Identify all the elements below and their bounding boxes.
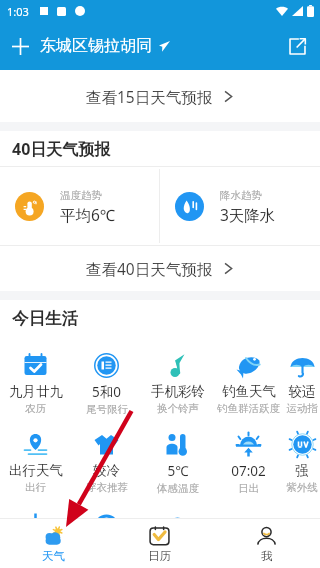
button[interactable]: 查看40日天气预报 [0, 246, 320, 291]
staticText: 洗车指数 [15, 560, 57, 568]
staticText: 农历 [25, 402, 46, 415]
staticText: 九月廿九 [9, 383, 63, 400]
staticText: 降水趋势 [220, 189, 262, 202]
button[interactable]: 日历 [106, 519, 213, 563]
staticText: 较冷 [93, 462, 120, 479]
button[interactable]: 手机彩铃 [142, 348, 213, 426]
button[interactable]: 东城区锡拉胡同 [40, 22, 170, 70]
staticText: 平均6℃ [60, 204, 116, 225]
button[interactable]: 降水趋势 [160, 167, 320, 245]
button[interactable]: 我 [213, 519, 320, 563]
staticText: 手机彩铃 [151, 383, 205, 400]
button[interactable]: 较弱 [213, 506, 284, 568]
staticText: 出行 [25, 481, 46, 494]
staticText: 钓鱼群活跃度 [217, 402, 280, 415]
button[interactable]: 较冷 [71, 427, 142, 505]
staticText: 我 [261, 549, 273, 563]
staticText: 3天降水 [220, 204, 276, 225]
staticText: 5℃ [167, 462, 189, 480]
staticText: 体感温度 [157, 482, 199, 495]
staticText: 查看40日天气预报 [86, 258, 213, 279]
staticText: 换个铃声 [157, 402, 199, 415]
staticText: 日出 [238, 482, 259, 495]
staticText: 穿衣推荐 [86, 481, 128, 494]
button[interactable]: 温度趋势 [0, 167, 159, 245]
staticText: 尾号限行 [86, 403, 128, 416]
button[interactable]: 5℃ [142, 427, 213, 506]
button[interactable]: 5和0 [71, 348, 142, 427]
button[interactable]: 查看15日天气预报 [0, 70, 320, 122]
staticText: 强 [295, 462, 309, 479]
button[interactable]: 钓鱼天气 [213, 348, 284, 426]
button[interactable]: 洗车 [0, 506, 71, 568]
button[interactable]: 07:02 [213, 427, 284, 506]
button[interactable]: 出行天气 [0, 427, 71, 505]
staticText: 查看15日天气预报 [86, 86, 213, 107]
button[interactable]: 17:04 [142, 506, 213, 568]
staticText: 今日生活 [12, 308, 78, 329]
staticText: 较弱 [235, 541, 262, 558]
button[interactable]: Add city [0, 22, 40, 70]
staticText: 钓鱼天气 [222, 383, 276, 400]
staticText: 天气 [42, 549, 65, 563]
button[interactable]: 较适宜 [284, 348, 320, 426]
staticText: 洗车 [22, 541, 49, 558]
staticText: 1:03 [7, 4, 29, 19]
staticText: 40日天气预报 [12, 138, 111, 160]
button[interactable]: Share [274, 22, 320, 70]
staticText: 较适宜 [284, 383, 320, 400]
staticText: 紫外线 [286, 481, 318, 494]
staticText: 出行天气 [9, 462, 63, 479]
button[interactable]: 天气 [0, 519, 106, 563]
button[interactable]: 强 [284, 427, 320, 505]
staticText: 东城区锡拉胡同 [40, 36, 152, 56]
staticText: 5和0 [92, 383, 121, 401]
button[interactable]: 九月廿九 [0, 348, 71, 426]
staticText: 日历 [148, 549, 171, 563]
staticText: 17:04 [160, 541, 195, 559]
button[interactable]: 中等 [71, 506, 142, 568]
staticText: 运动指数 [284, 402, 320, 415]
staticText: 感冒指数 [228, 560, 270, 568]
staticText: 07:02 [231, 462, 266, 480]
staticText: 温度趋势 [60, 189, 102, 202]
